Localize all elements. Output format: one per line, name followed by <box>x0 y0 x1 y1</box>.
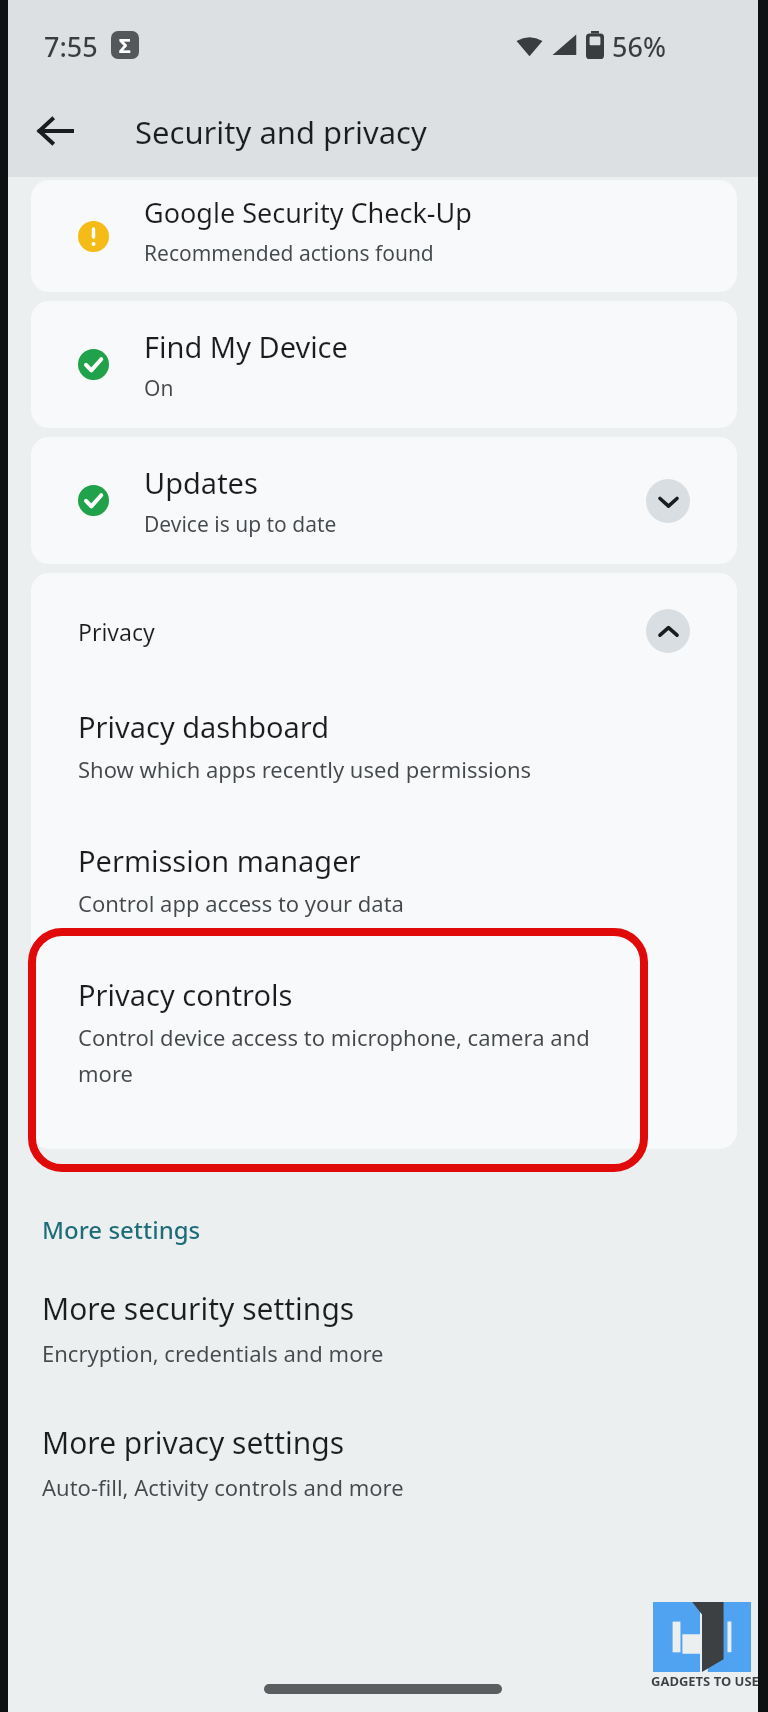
staticText: 56% <box>612 28 666 62</box>
button[interactable]: Updates <box>31 437 737 564</box>
button[interactable]: Find My Device <box>31 301 737 428</box>
staticText: Recommended actions found <box>144 239 434 268</box>
staticText: 7:55 <box>44 28 98 62</box>
button[interactable]: More security settings <box>8 1282 758 1392</box>
button[interactable]: Back <box>24 100 86 162</box>
staticText: Updates <box>144 463 258 502</box>
button[interactable]: More privacy settings <box>8 1416 758 1526</box>
button[interactable]: Privacy controls <box>31 957 737 1149</box>
button[interactable]: Permission manager <box>31 823 737 957</box>
button[interactable]: Google Security Check-Up <box>31 180 737 292</box>
staticText: More privacy settings <box>42 1422 345 1463</box>
staticText: Show which apps recently used permission… <box>78 754 532 784</box>
button[interactable]: Expand Updates <box>646 479 690 523</box>
button[interactable]: Privacy <box>31 573 737 689</box>
staticText: Privacy <box>78 616 155 647</box>
staticText: GADGETS TO USE <box>651 1672 759 1690</box>
staticText: Control device access to microphone, cam… <box>78 1022 590 1088</box>
staticText: Auto-fill, Activity controls and more <box>42 1472 404 1502</box>
button[interactable]: Collapse Privacy <box>646 609 690 653</box>
staticText: On <box>144 374 174 403</box>
staticText: Find My Device <box>144 327 348 366</box>
staticText: Permission manager <box>78 841 361 880</box>
staticText: Privacy controls <box>78 975 293 1014</box>
staticText: Σ <box>119 32 131 59</box>
staticText: Security and privacy <box>135 111 427 153</box>
staticText: Privacy dashboard <box>78 707 330 746</box>
staticText: Device is up to date <box>144 510 337 539</box>
staticText: Google Security Check-Up <box>144 194 472 231</box>
staticText: Control app access to your data <box>78 888 404 918</box>
button[interactable]: Privacy dashboard <box>31 689 737 823</box>
staticText: More settings <box>42 1213 201 1246</box>
staticText: More security settings <box>42 1288 355 1329</box>
staticText: Encryption, credentials and more <box>42 1338 384 1368</box>
